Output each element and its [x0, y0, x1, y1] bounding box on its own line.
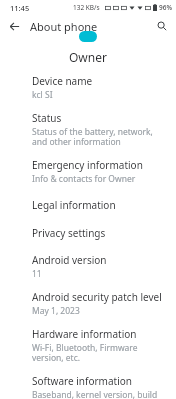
button[interactable]: Search: [152, 16, 172, 36]
staticText: Info & contacts for Owner: [32, 173, 136, 185]
button[interactable]: Privacy settings: [0, 212, 176, 240]
staticText: Software information: [32, 374, 132, 388]
staticText: Baseband, kernel version, build number, …: [32, 389, 168, 399]
button[interactable]: Device name: [0, 74, 176, 101]
staticText: About phone: [30, 19, 98, 34]
button[interactable]: Android version: [0, 240, 176, 280]
staticText: Android security patch level: [32, 290, 162, 304]
button[interactable]: Hardware information: [0, 317, 176, 364]
staticText: kcl SI: [32, 89, 53, 101]
staticText: Owner: [69, 49, 107, 65]
staticText: Emergency information: [32, 158, 143, 172]
staticText: Device name: [32, 74, 93, 88]
staticText: Android version: [32, 253, 107, 267]
button[interactable]: Software information: [0, 364, 176, 399]
staticText: Status of the battery, network, and othe…: [32, 126, 168, 148]
staticText: 132 KB/s: [73, 3, 100, 12]
staticText: Hardware information: [32, 327, 137, 341]
staticText: May 1, 2023: [32, 305, 80, 317]
staticText: 96%: [159, 3, 172, 12]
staticText: Wi-Fi, Bluetooth, Firmware version, etc.: [32, 342, 168, 364]
staticText: 11:45: [10, 3, 30, 13]
staticText: 11: [32, 268, 42, 280]
button[interactable]: Back: [4, 16, 24, 36]
button[interactable]: Android security patch level: [0, 280, 176, 317]
staticText: Status: [32, 111, 62, 125]
button[interactable]: Emergency information: [0, 148, 176, 185]
button[interactable]: Account avatar: [79, 31, 97, 42]
staticText: Legal information: [32, 198, 116, 212]
button[interactable]: Legal information: [0, 185, 176, 212]
button[interactable]: Status: [0, 101, 176, 148]
staticText: Privacy settings: [32, 226, 106, 240]
